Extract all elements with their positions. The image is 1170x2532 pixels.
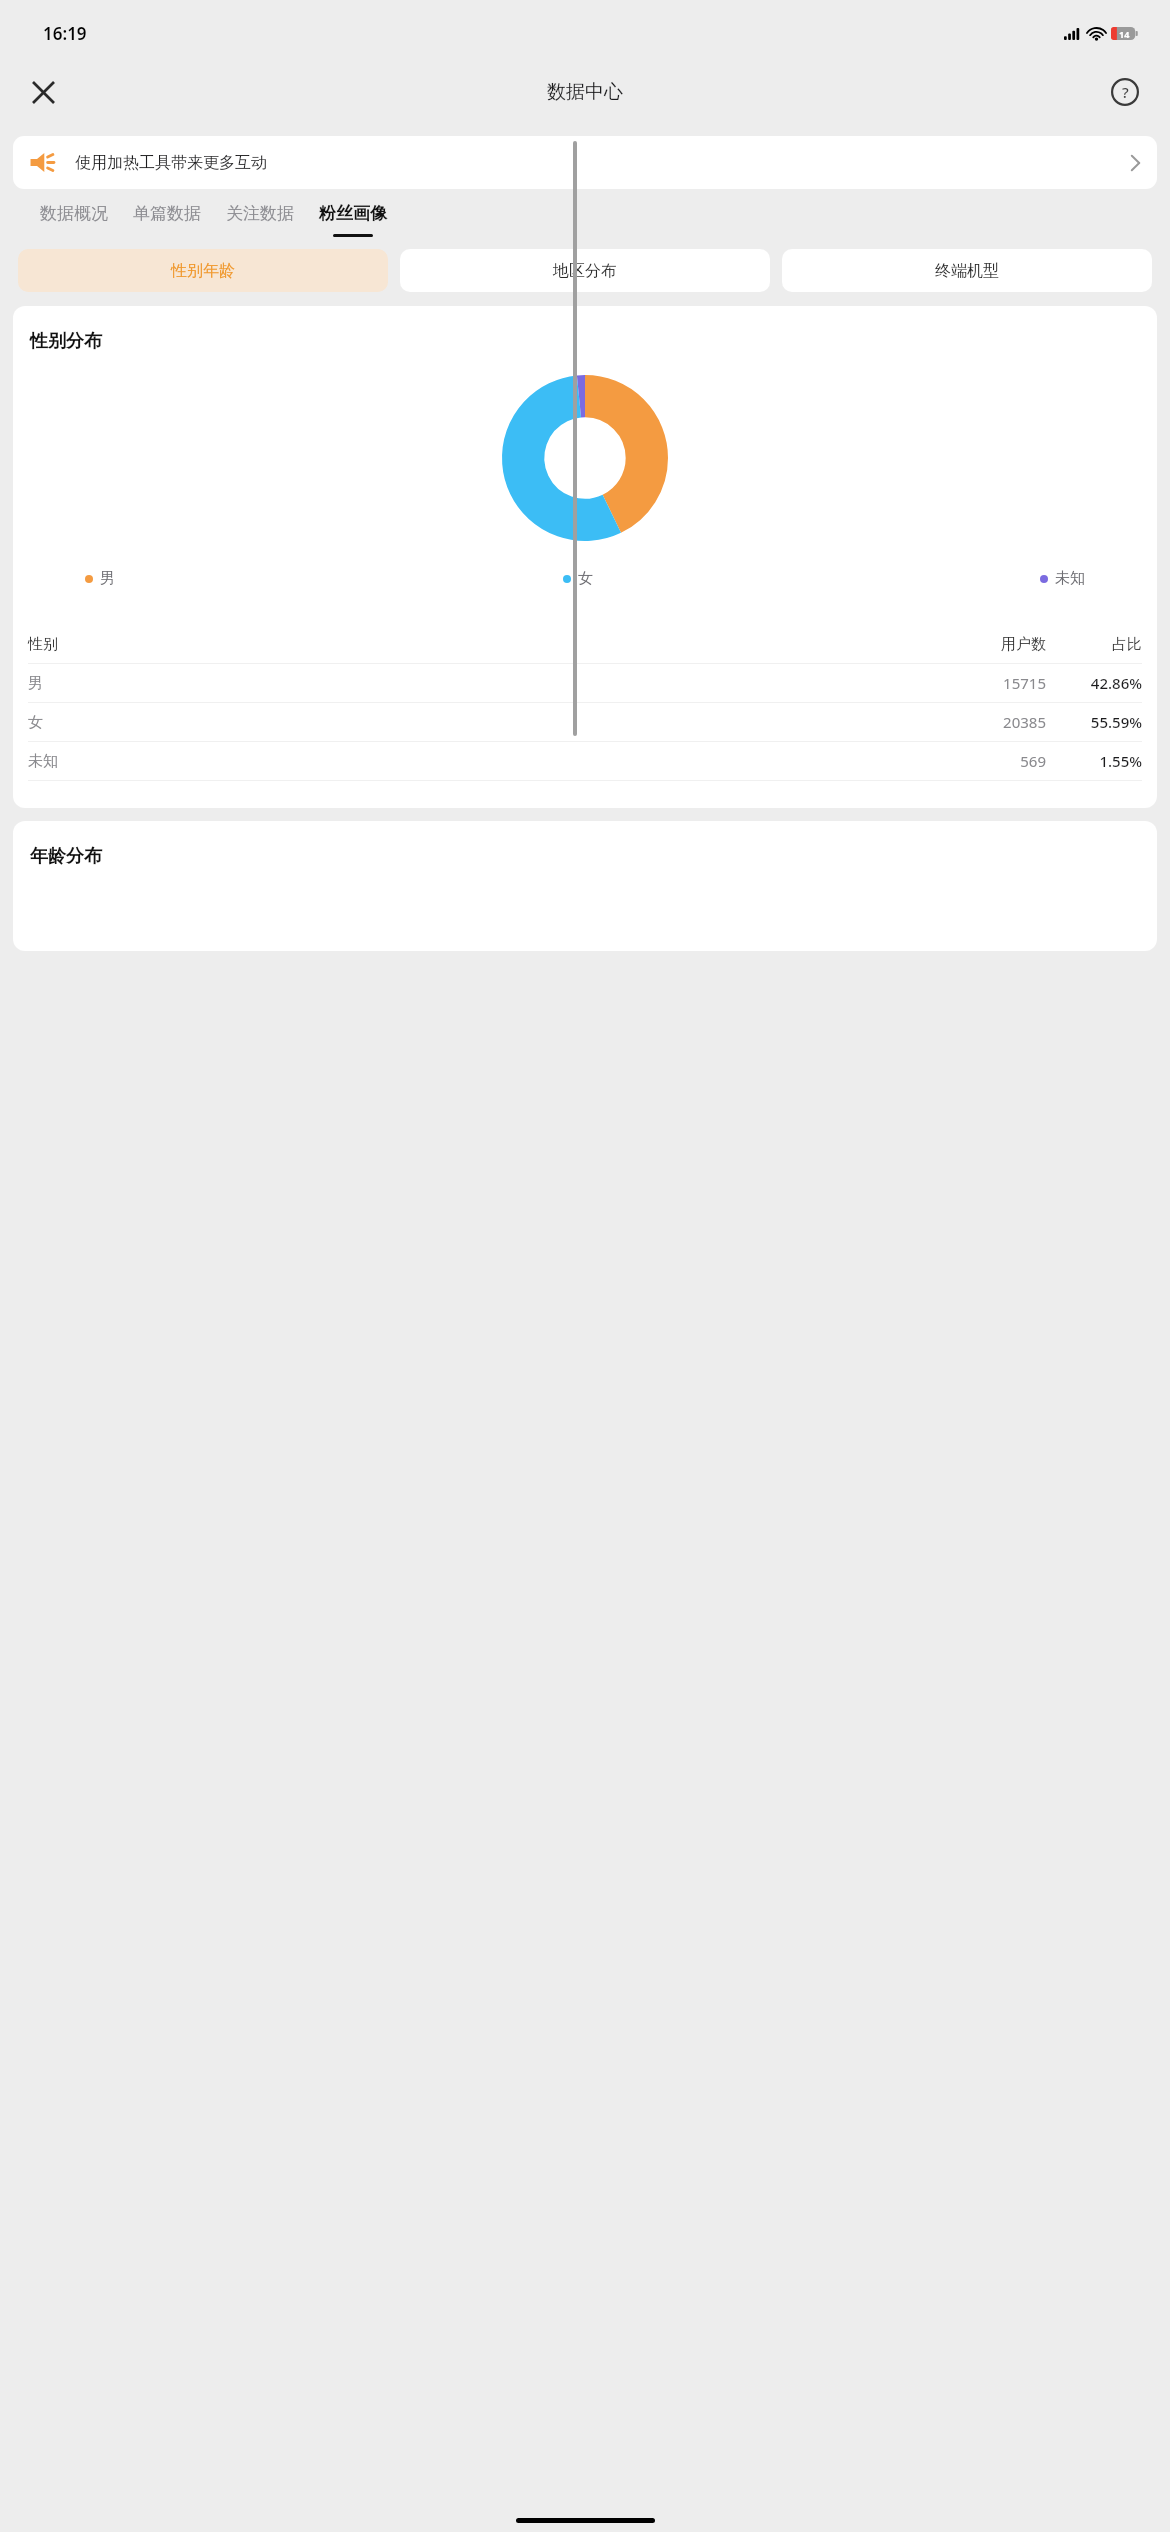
staticText: 单篇数据 xyxy=(133,203,201,224)
button[interactable]: 粉丝画像 xyxy=(310,203,396,237)
button[interactable]: 关注数据 xyxy=(217,203,303,237)
staticText: 42.86% xyxy=(1064,673,1142,693)
button[interactable]: 单篇数据 xyxy=(124,203,210,237)
staticText: 占比 xyxy=(1064,635,1142,654)
staticText: 年龄分布 xyxy=(30,845,102,868)
button[interactable]: 使用加热工具带来更多互动 xyxy=(13,136,1157,189)
staticText: 使用加热工具带来更多互动 xyxy=(75,153,267,173)
staticText: 男 xyxy=(28,674,537,693)
staticText: 1.55% xyxy=(1064,751,1142,771)
staticText: 15715 xyxy=(537,673,1046,693)
staticText: 性别分布 xyxy=(30,330,102,353)
staticText: 数据概况 xyxy=(40,203,108,224)
staticText: 20385 xyxy=(537,712,1046,732)
button[interactable]: Help xyxy=(1104,71,1146,113)
staticText: 女 xyxy=(28,713,537,732)
staticText: 569 xyxy=(537,751,1046,771)
button[interactable]: 数据概况 xyxy=(31,203,117,237)
button[interactable]: Close xyxy=(22,71,64,113)
staticText: 数据中心 xyxy=(547,80,623,104)
button[interactable]: 性别年龄 xyxy=(18,249,388,292)
staticText: 地区分布 xyxy=(553,261,617,281)
staticText: 16:19 xyxy=(43,22,87,45)
staticText: 未知 xyxy=(1055,569,1085,588)
staticText: 用户数 xyxy=(537,635,1046,654)
staticText: 未知 xyxy=(28,752,537,771)
staticText: 终端机型 xyxy=(935,261,999,281)
staticText: 性别年龄 xyxy=(171,261,235,281)
staticText: 粉丝画像 xyxy=(319,203,387,224)
button[interactable]: 地区分布 xyxy=(400,249,770,292)
button[interactable]: 终端机型 xyxy=(782,249,1152,292)
staticText: 男 xyxy=(100,569,115,588)
staticText: 关注数据 xyxy=(226,203,294,224)
staticText: 14 xyxy=(1119,28,1130,40)
staticText: ? xyxy=(1122,82,1129,102)
staticText: 55.59% xyxy=(1064,712,1142,732)
staticText: 性别 xyxy=(28,635,537,654)
staticText: 女 xyxy=(578,569,593,588)
